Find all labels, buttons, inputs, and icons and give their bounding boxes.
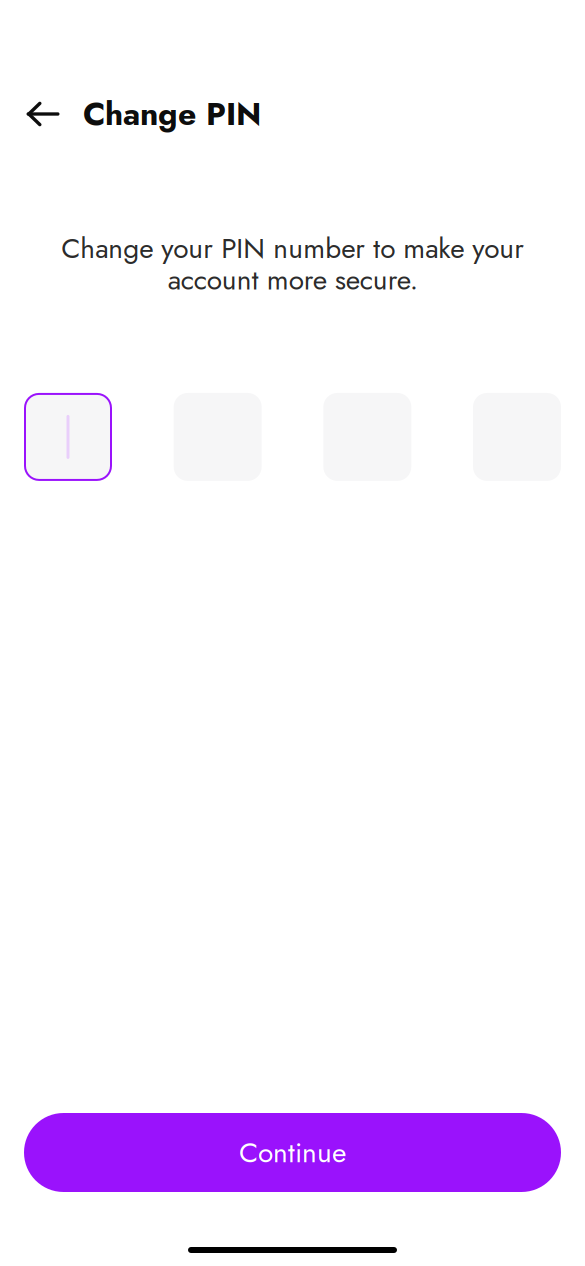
button[interactable]: Continue xyxy=(24,1113,561,1192)
staticText: Change PIN xyxy=(83,91,261,137)
staticText: Continue xyxy=(239,1132,346,1173)
staticText: Change your PIN number to make your acco… xyxy=(61,228,524,300)
button[interactable]: Back xyxy=(17,92,69,136)
button[interactable]: PIN digit 1, editing xyxy=(24,393,112,481)
